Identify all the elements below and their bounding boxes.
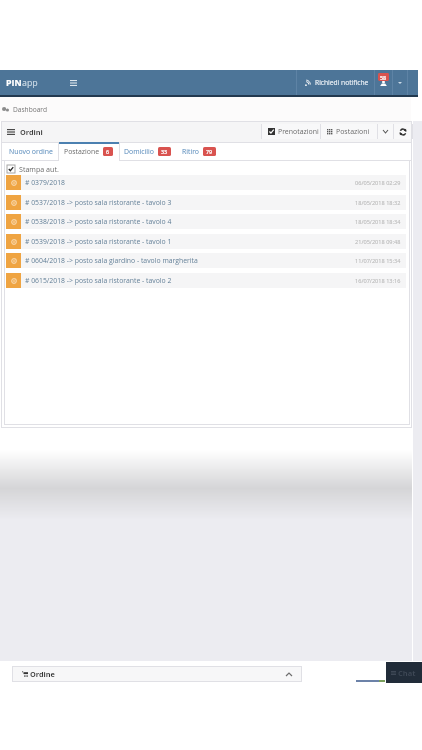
button[interactable]: PIN: [2, 70, 42, 95]
staticText: Postazioni: [336, 127, 370, 136]
staticText: Domicilio: [124, 147, 155, 156]
button[interactable]: Dashboard: [13, 105, 47, 114]
button[interactable]: Postazioni: [321, 124, 377, 139]
staticText: # 0538/2018 -> posto sala ristorante - t…: [25, 217, 172, 226]
staticText: 11/07/2018 15:34: [355, 257, 401, 265]
button[interactable]: # 0604/2018 -> posto sala giardino - tav…: [6, 253, 406, 268]
staticText: 16/07/2018 13:16: [355, 277, 401, 285]
button[interactable]: Stampa aut.: [7, 163, 59, 175]
staticText: Ordine: [30, 669, 55, 679]
staticText: # 0537/2018 -> posto sala ristorante - t…: [25, 198, 172, 207]
button[interactable]: # 0539/2018 -> posto sala ristorante - t…: [6, 234, 406, 249]
staticText: 18/05/2018 18:32: [355, 199, 401, 207]
button[interactable]: Ritiro: [177, 142, 221, 161]
button[interactable]: # 0379/2018: [6, 175, 406, 190]
staticText: app: [22, 77, 38, 89]
staticText: 58: [380, 74, 387, 81]
staticText: 18/05/2018 18:34: [355, 218, 401, 226]
staticText: PIN: [6, 77, 22, 89]
staticText: Stampa aut.: [19, 164, 59, 174]
staticText: Postazione: [64, 147, 100, 156]
staticText: # 0539/2018 -> posto sala ristorante - t…: [25, 237, 172, 246]
button[interactable]: # 0537/2018 -> posto sala ristorante - t…: [6, 195, 406, 210]
button[interactable]: Nuovo ordine: [3, 142, 58, 161]
staticText: Ordini: [20, 127, 43, 137]
staticText: Ritiro: [182, 147, 200, 156]
staticText: Prenotazioni: [278, 127, 319, 136]
staticText: Nuovo ordine: [9, 147, 53, 156]
button[interactable]: Domicilio: [118, 142, 177, 161]
button[interactable]: Menu utente: [393, 70, 407, 95]
staticText: 33: [161, 148, 168, 155]
button[interactable]: # 0538/2018 -> posto sala ristorante - t…: [6, 214, 406, 229]
button[interactable]: Altre opzioni: [378, 124, 393, 139]
button[interactable]: # 0615/2018 -> posto sala ristorante - t…: [6, 273, 406, 288]
button[interactable]: Richiedi notifiche: [297, 70, 375, 95]
staticText: 79: [206, 148, 213, 155]
staticText: # 0615/2018 -> posto sala ristorante - t…: [25, 276, 172, 285]
staticText: Chat: [398, 668, 416, 678]
staticText: # 0379/2018: [25, 178, 66, 187]
staticText: 21/05/2018 09:48: [355, 238, 401, 246]
button[interactable]: Aggiorna: [394, 124, 412, 139]
button[interactable]: Notifiche: [375, 70, 392, 95]
button[interactable]: Prenotazioni: [262, 124, 320, 139]
staticText: 06/05/2018 02:29: [355, 179, 401, 187]
button[interactable]: Menu: [64, 70, 83, 95]
button[interactable]: Ordini: [5, 121, 45, 142]
button[interactable]: Ordine: [12, 666, 302, 682]
staticText: # 0604/2018 -> posto sala giardino - tav…: [25, 256, 198, 265]
staticText: Richiedi notifiche: [315, 78, 369, 87]
button[interactable]: Chat: [386, 662, 422, 683]
button[interactable]: Postazione: [58, 142, 119, 161]
staticText: 6: [106, 148, 110, 155]
